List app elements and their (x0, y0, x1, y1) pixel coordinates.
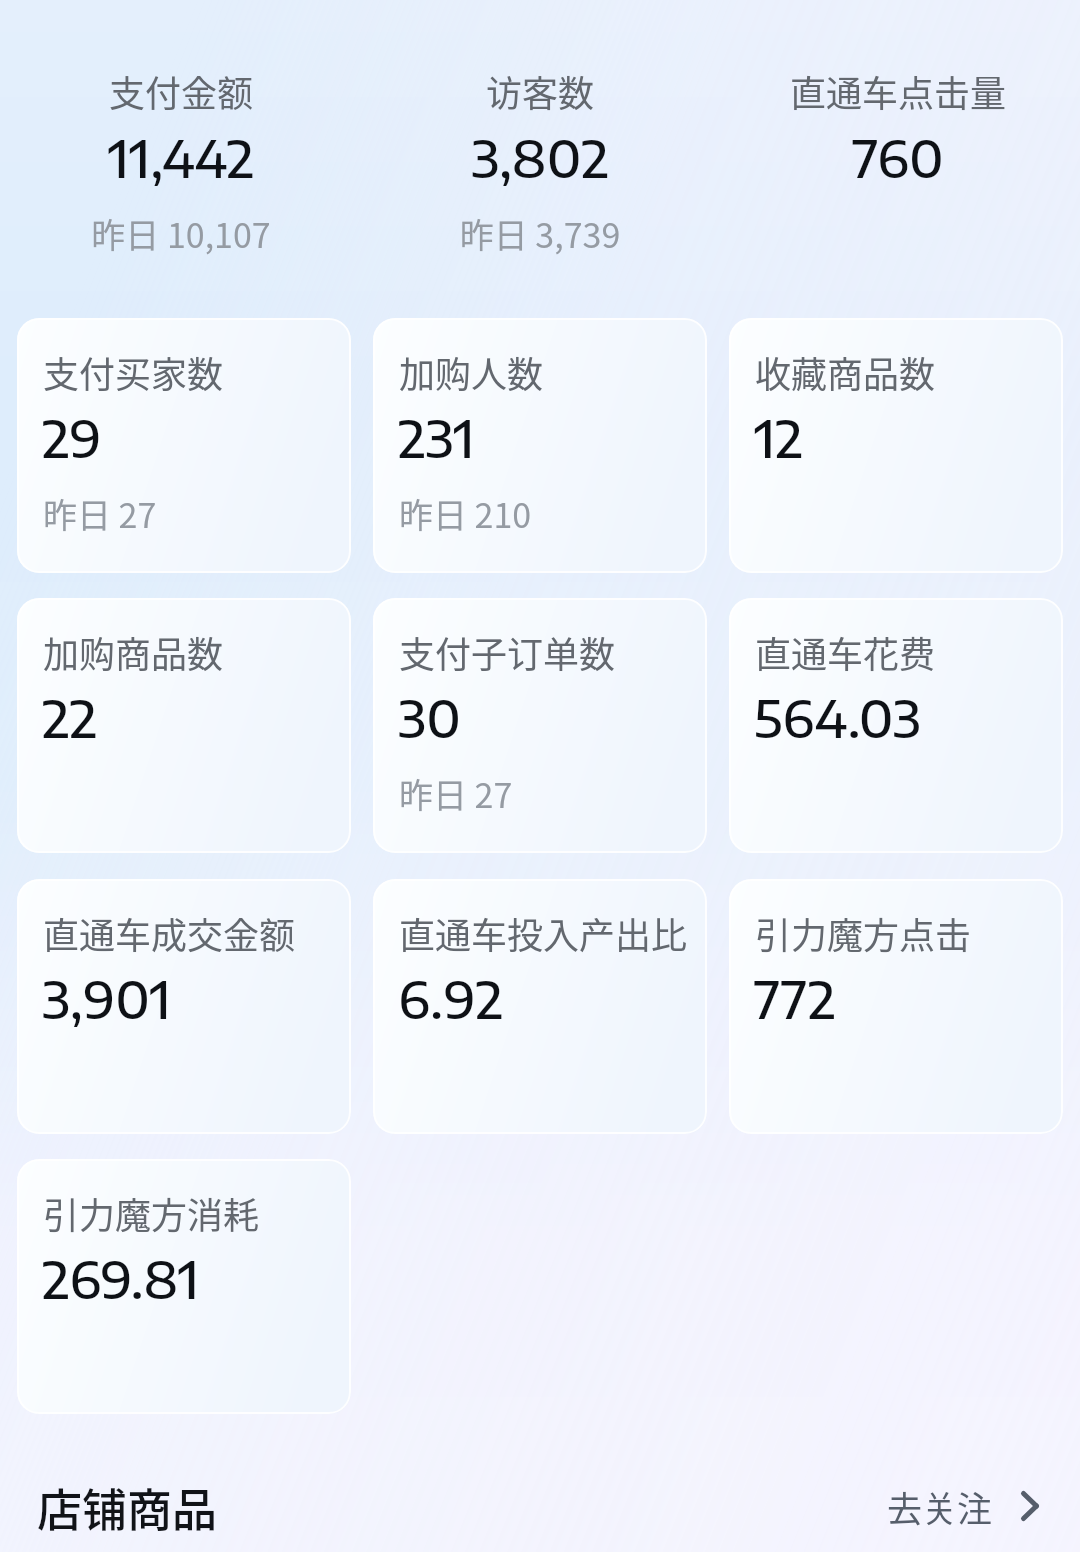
button[interactable]: 收藏商品数 (729, 318, 1063, 573)
staticText: 收藏商品数 (755, 346, 936, 398)
staticText: 引力魔方点击 (755, 907, 972, 959)
staticText: 3,901 (42, 966, 171, 1030)
staticText: 29 (42, 405, 102, 469)
staticText: 直通车投入产出比 (399, 907, 688, 959)
button[interactable]: 直通车花费 (729, 598, 1063, 853)
button[interactable]: 引力魔方点击 (729, 879, 1063, 1134)
staticText: 昨日 210 (399, 489, 532, 538)
button[interactable]: 加购人数 (373, 318, 707, 573)
staticText: 访客数 (360, 65, 720, 117)
staticText: 引力魔方消耗 (43, 1187, 260, 1239)
button[interactable]: 访客数 (360, 0, 720, 265)
staticText: 支付子订单数 (399, 626, 616, 678)
staticText: 直通车成交金额 (43, 907, 296, 959)
button[interactable]: 店铺商品 (0, 1450, 1080, 1552)
staticText: 760 (718, 125, 1078, 189)
staticText: 22 (42, 685, 98, 749)
staticText: 269.81 (42, 1246, 200, 1310)
staticText: 11,442 (1, 125, 361, 189)
staticText: 昨日 27 (43, 489, 157, 538)
staticText: 加购商品数 (43, 626, 224, 678)
staticText: 772 (754, 966, 836, 1030)
staticText: 店铺商品 (37, 1475, 218, 1540)
button[interactable]: 直通车点击量 (718, 0, 1078, 265)
staticText: 加购人数 (399, 346, 544, 398)
staticText: 231 (398, 405, 475, 469)
button[interactable]: 支付买家数 (17, 318, 351, 573)
button[interactable]: 支付金额 (1, 0, 361, 265)
staticText: 直通车点击量 (718, 65, 1078, 117)
button[interactable]: 去关注 (887, 1473, 1039, 1539)
staticText: 12 (754, 405, 803, 469)
button[interactable]: 直通车成交金额 (17, 879, 351, 1134)
staticText: 昨日 3,739 (360, 209, 720, 258)
staticText: 去关注 (887, 1481, 993, 1532)
button[interactable]: 引力魔方消耗 (17, 1159, 351, 1414)
staticText: 支付买家数 (43, 346, 224, 398)
staticText: 6.92 (398, 966, 504, 1030)
button[interactable]: 加购商品数 (17, 598, 351, 853)
staticText: 30 (398, 685, 461, 749)
staticText: 昨日 10,107 (1, 209, 361, 258)
other: More (1021, 1491, 1039, 1521)
button[interactable]: 支付子订单数 (373, 598, 707, 853)
staticText: 3,802 (360, 125, 720, 189)
staticText: 支付金额 (1, 65, 361, 117)
button[interactable]: 直通车投入产出比 (373, 879, 707, 1134)
staticText: 昨日 27 (399, 769, 513, 818)
staticText: 直通车花费 (755, 626, 936, 678)
staticText: 564.03 (754, 685, 921, 749)
